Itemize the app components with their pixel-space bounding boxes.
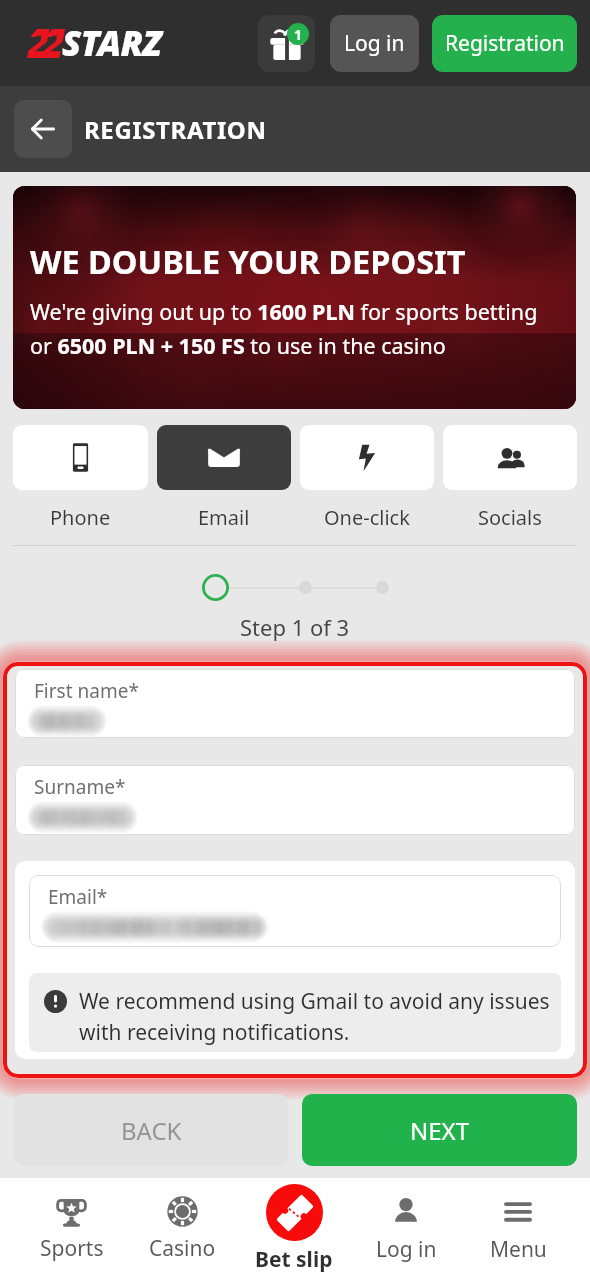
staticText: Sports: [40, 1234, 104, 1263]
button[interactable]: Menu: [462, 1178, 574, 1280]
button[interactable]: Casino: [127, 1178, 238, 1280]
staticText: 1: [294, 25, 303, 44]
button[interactable]: One-click: [300, 425, 434, 531]
staticText: NEXT: [410, 1114, 469, 1147]
staticText: We recommend using Gmail to avoid any is…: [79, 987, 553, 1046]
button[interactable]: Email*: [29, 875, 561, 947]
other: Bet slip: [266, 1184, 323, 1241]
staticText: Email*: [48, 884, 108, 910]
button[interactable]: 22STARZ home: [27, 19, 163, 67]
staticText: Phone: [50, 504, 111, 531]
staticText: We're giving out up to 1600 PLN for spor…: [30, 297, 564, 360]
button[interactable]: Email: [157, 425, 291, 531]
button[interactable]: NEXT: [302, 1094, 577, 1166]
button[interactable]: Phone: [13, 425, 148, 531]
staticText: Surname*: [34, 774, 126, 800]
button[interactable]: Log in: [350, 1178, 462, 1280]
staticText: Casino: [149, 1234, 216, 1263]
staticText: First name*: [34, 678, 139, 704]
button[interactable]: Bet slip: [238, 1178, 350, 1280]
staticText: Socials: [478, 504, 542, 531]
staticText: Email: [198, 504, 250, 531]
staticText: Step 1 of 3: [240, 612, 350, 642]
button[interactable]: Log in: [330, 15, 419, 72]
button[interactable]: First name*: [15, 669, 575, 738]
button[interactable]: Back: [14, 100, 72, 158]
staticText: WE DOUBLE YOUR DEPOSIT: [30, 239, 466, 283]
button[interactable]: Sports: [16, 1178, 127, 1280]
staticText: Bet slip: [255, 1245, 333, 1274]
staticText: One-click: [324, 504, 410, 531]
button[interactable]: Bonuses: [258, 15, 315, 72]
button[interactable]: Socials: [443, 425, 577, 531]
button[interactable]: Surname*: [15, 765, 575, 835]
staticText: REGISTRATION: [84, 113, 267, 146]
staticText: Log in: [376, 1235, 437, 1264]
staticText: STARZ: [62, 19, 162, 67]
button[interactable]: BACK: [14, 1094, 288, 1166]
button[interactable]: Registration: [432, 15, 577, 72]
staticText: Menu: [490, 1235, 547, 1264]
staticText: Log in: [344, 29, 405, 58]
staticText: Registration: [445, 29, 565, 58]
staticText: BACK: [121, 1114, 182, 1147]
